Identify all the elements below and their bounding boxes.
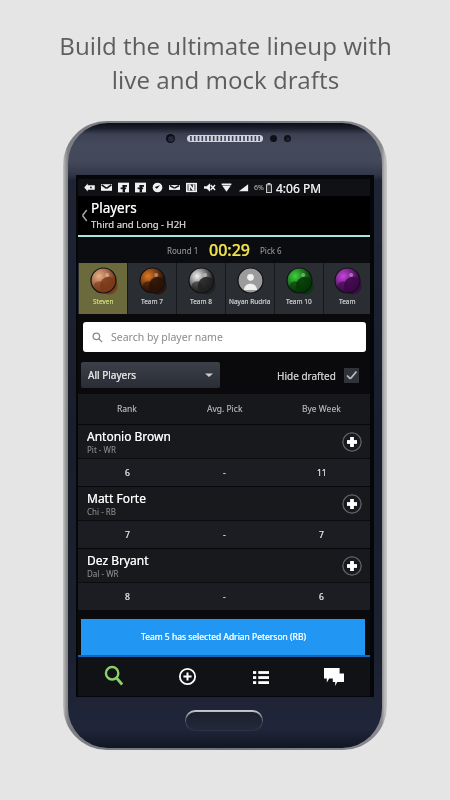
button[interactable]: Team 7 [128, 263, 176, 314]
button[interactable]: Hide drafted [277, 368, 361, 383]
button[interactable]: Antonio Brown [78, 424, 370, 486]
staticText: 6 [319, 591, 324, 603]
staticText: 7 [125, 529, 130, 541]
button[interactable]: Team 8 [177, 263, 225, 314]
staticText: Build the ultimate lineup with live and … [59, 29, 392, 96]
staticText: Hide drafted [277, 369, 336, 383]
button[interactable]: Add Matt Forte [342, 494, 362, 514]
staticText: Dal - WR [87, 568, 119, 579]
staticText: Nayan Rudria [229, 297, 271, 306]
staticText: Antonio Brown [87, 428, 171, 444]
staticText: - [223, 591, 226, 603]
staticText: Team 7 [141, 297, 163, 306]
button[interactable]: Add Dez Bryant [342, 556, 362, 576]
staticText: Bye Week [302, 403, 341, 415]
staticText: Matt Forte [87, 490, 146, 506]
button[interactable]: Team 10 [275, 263, 323, 314]
button[interactable]: Add Antonio Brown [342, 432, 362, 452]
staticText: Dez Bryant [87, 552, 149, 568]
button[interactable]: Search by player name [83, 322, 366, 352]
staticText: 00:29 [209, 239, 250, 261]
staticText: Players [91, 199, 137, 217]
staticText: Rank [117, 403, 137, 415]
staticText: Avg. Pick [207, 403, 243, 415]
staticText: - [223, 467, 226, 479]
button[interactable]: Matt Forte [78, 486, 370, 548]
button[interactable]: Team [324, 263, 370, 314]
staticText: 4:06 PM [276, 180, 322, 196]
button[interactable]: Search [78, 657, 151, 696]
button[interactable]: Nayan Rudria [226, 263, 274, 314]
button[interactable]: All Players [81, 362, 220, 388]
staticText: Search by player name [111, 330, 223, 344]
button[interactable]: Dez Bryant [78, 548, 370, 610]
staticText: Team 10 [286, 297, 312, 306]
staticText: Team 5 has selected Adrian Peterson (RB) [141, 631, 306, 643]
staticText: All Players [88, 368, 137, 382]
staticText: Pit - WR [87, 444, 116, 455]
button[interactable]: Chat [297, 657, 370, 696]
staticText: Third and Long - H2H [91, 218, 187, 231]
button[interactable]: List [224, 657, 297, 696]
staticText: - [223, 529, 226, 541]
staticText: Steven [93, 297, 114, 306]
staticText: 11 [317, 467, 327, 479]
staticText: Pick 6 [260, 245, 282, 256]
button[interactable]: Steven [79, 263, 127, 314]
staticText: 7 [319, 529, 324, 541]
staticText: 6% [254, 183, 264, 193]
button[interactable]: Team 5 has selected Adrian Peterson (RB) [81, 619, 365, 655]
button[interactable]: Back [78, 196, 91, 235]
staticText: Round 1 [167, 245, 199, 256]
staticText: Team [339, 297, 356, 306]
staticText: 8 [125, 591, 130, 603]
staticText: Chi - RB [87, 506, 116, 517]
button[interactable]: Add [151, 657, 224, 696]
staticText: Team 8 [190, 297, 212, 306]
staticText: 6 [125, 467, 130, 479]
